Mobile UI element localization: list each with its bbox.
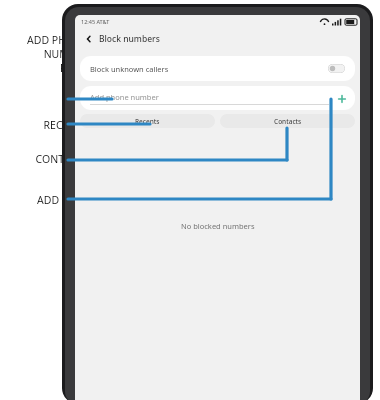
staticText: CONTACTS [0, 152, 88, 166]
staticText: RECENTS [0, 118, 88, 132]
button[interactable]: Recents [80, 114, 215, 128]
staticText: Contacts [274, 117, 302, 126]
staticText: 12:45 AT&T [81, 18, 110, 25]
button[interactable]: Add [335, 92, 348, 105]
button[interactable]: Back [82, 32, 96, 46]
button[interactable]: Contacts [220, 114, 355, 128]
staticText: ADD ICON [0, 193, 88, 207]
staticText: ADD PHONE NUMBER FIELD [0, 33, 88, 75]
button[interactable]: Block unknown callers [80, 56, 355, 81]
button[interactable]: Add phone number [90, 92, 329, 105]
staticText: No blocked numbers [181, 221, 255, 231]
staticText: Block numbers [99, 33, 160, 45]
staticText: Recents [135, 117, 160, 126]
button[interactable]: Block unknown callers toggle [328, 64, 345, 73]
staticText: Add phone number [90, 92, 159, 102]
staticText: Block unknown callers [90, 64, 169, 74]
